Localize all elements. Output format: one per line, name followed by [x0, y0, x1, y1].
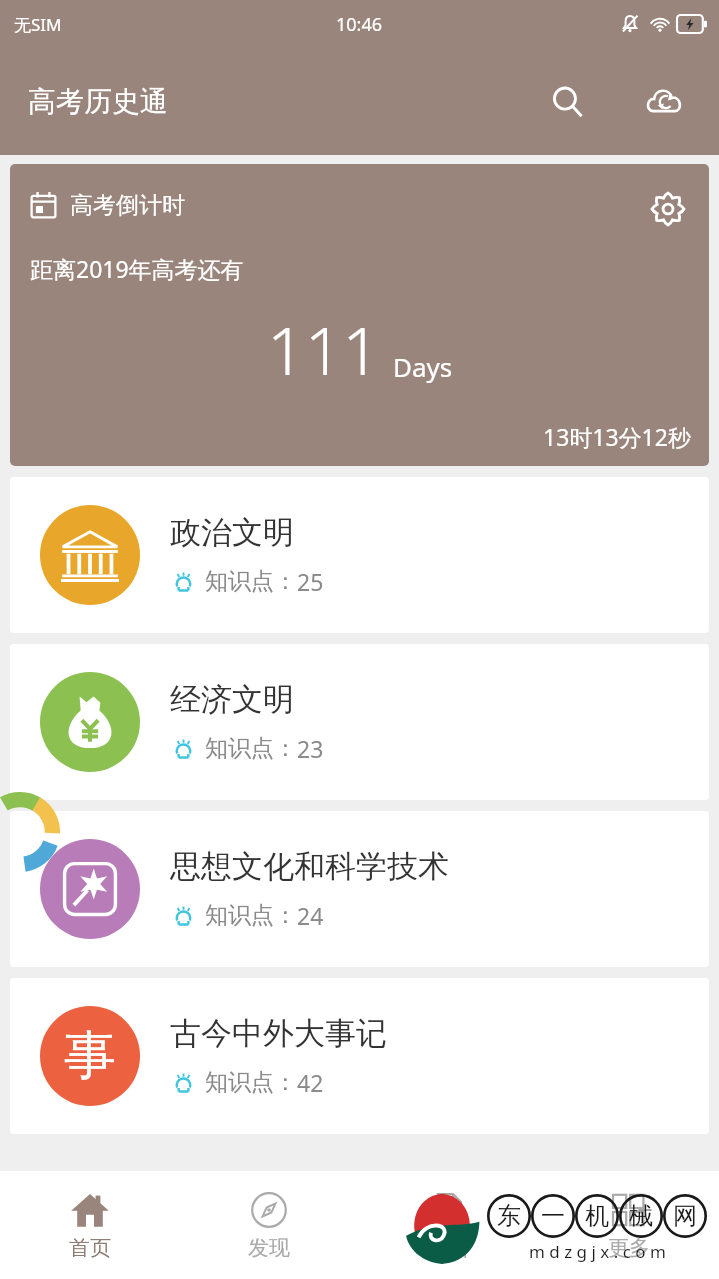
staticText: 一	[541, 1201, 565, 1231]
button[interactable]: 政治文明	[10, 477, 709, 633]
staticText: 经济文明	[170, 680, 294, 719]
staticText: m d z g j x . c o m	[529, 1240, 666, 1263]
staticText: 政治文明	[170, 513, 294, 552]
staticText: 知识点：	[205, 1068, 297, 1097]
button[interactable]: 更多	[539, 1171, 719, 1279]
button[interactable]: Settings	[645, 186, 691, 232]
staticText: 42	[297, 1067, 324, 1098]
staticText: 高考倒计时	[70, 191, 185, 220]
staticText: 思想文化和科学技术	[170, 847, 449, 886]
staticText: 网	[673, 1201, 697, 1231]
staticText: 知识点：	[205, 901, 297, 930]
button[interactable]: 发现	[179, 1171, 359, 1279]
staticText: 23	[297, 733, 324, 764]
staticText: 知识点：	[205, 567, 297, 596]
staticText: 高考历史通	[28, 84, 168, 119]
staticText: 知识点：	[205, 734, 297, 763]
staticText: 古今中外大事记	[170, 1014, 387, 1053]
staticText: 事	[64, 1023, 116, 1089]
staticText: 距离2019年高考还有	[30, 253, 244, 284]
button[interactable]: 首页	[0, 1171, 179, 1279]
staticText: 机	[585, 1201, 609, 1231]
staticText: 首页	[69, 1235, 111, 1261]
staticText: 24	[297, 900, 324, 931]
button[interactable]: Cloud sync	[637, 75, 691, 129]
button[interactable]: 资料	[359, 1171, 539, 1279]
staticText: Days	[393, 349, 453, 384]
staticText: 无SIM	[14, 13, 62, 36]
staticText: 械	[629, 1201, 653, 1231]
staticText: 更多	[608, 1235, 650, 1261]
staticText: 25	[297, 566, 324, 597]
button[interactable]: 经济文明	[10, 644, 709, 800]
staticText: 10:46	[336, 12, 383, 37]
button[interactable]: 思想文化和科学技术	[10, 811, 709, 967]
staticText: 东	[497, 1201, 521, 1231]
staticText: 资料	[428, 1235, 470, 1261]
button[interactable]: Search	[541, 75, 595, 129]
button[interactable]: 高考倒计时	[10, 164, 709, 466]
staticText: 111	[267, 304, 381, 394]
staticText: 13时13分12秒	[543, 421, 691, 452]
staticText: 发现	[248, 1235, 290, 1261]
button[interactable]: 事	[10, 978, 709, 1134]
